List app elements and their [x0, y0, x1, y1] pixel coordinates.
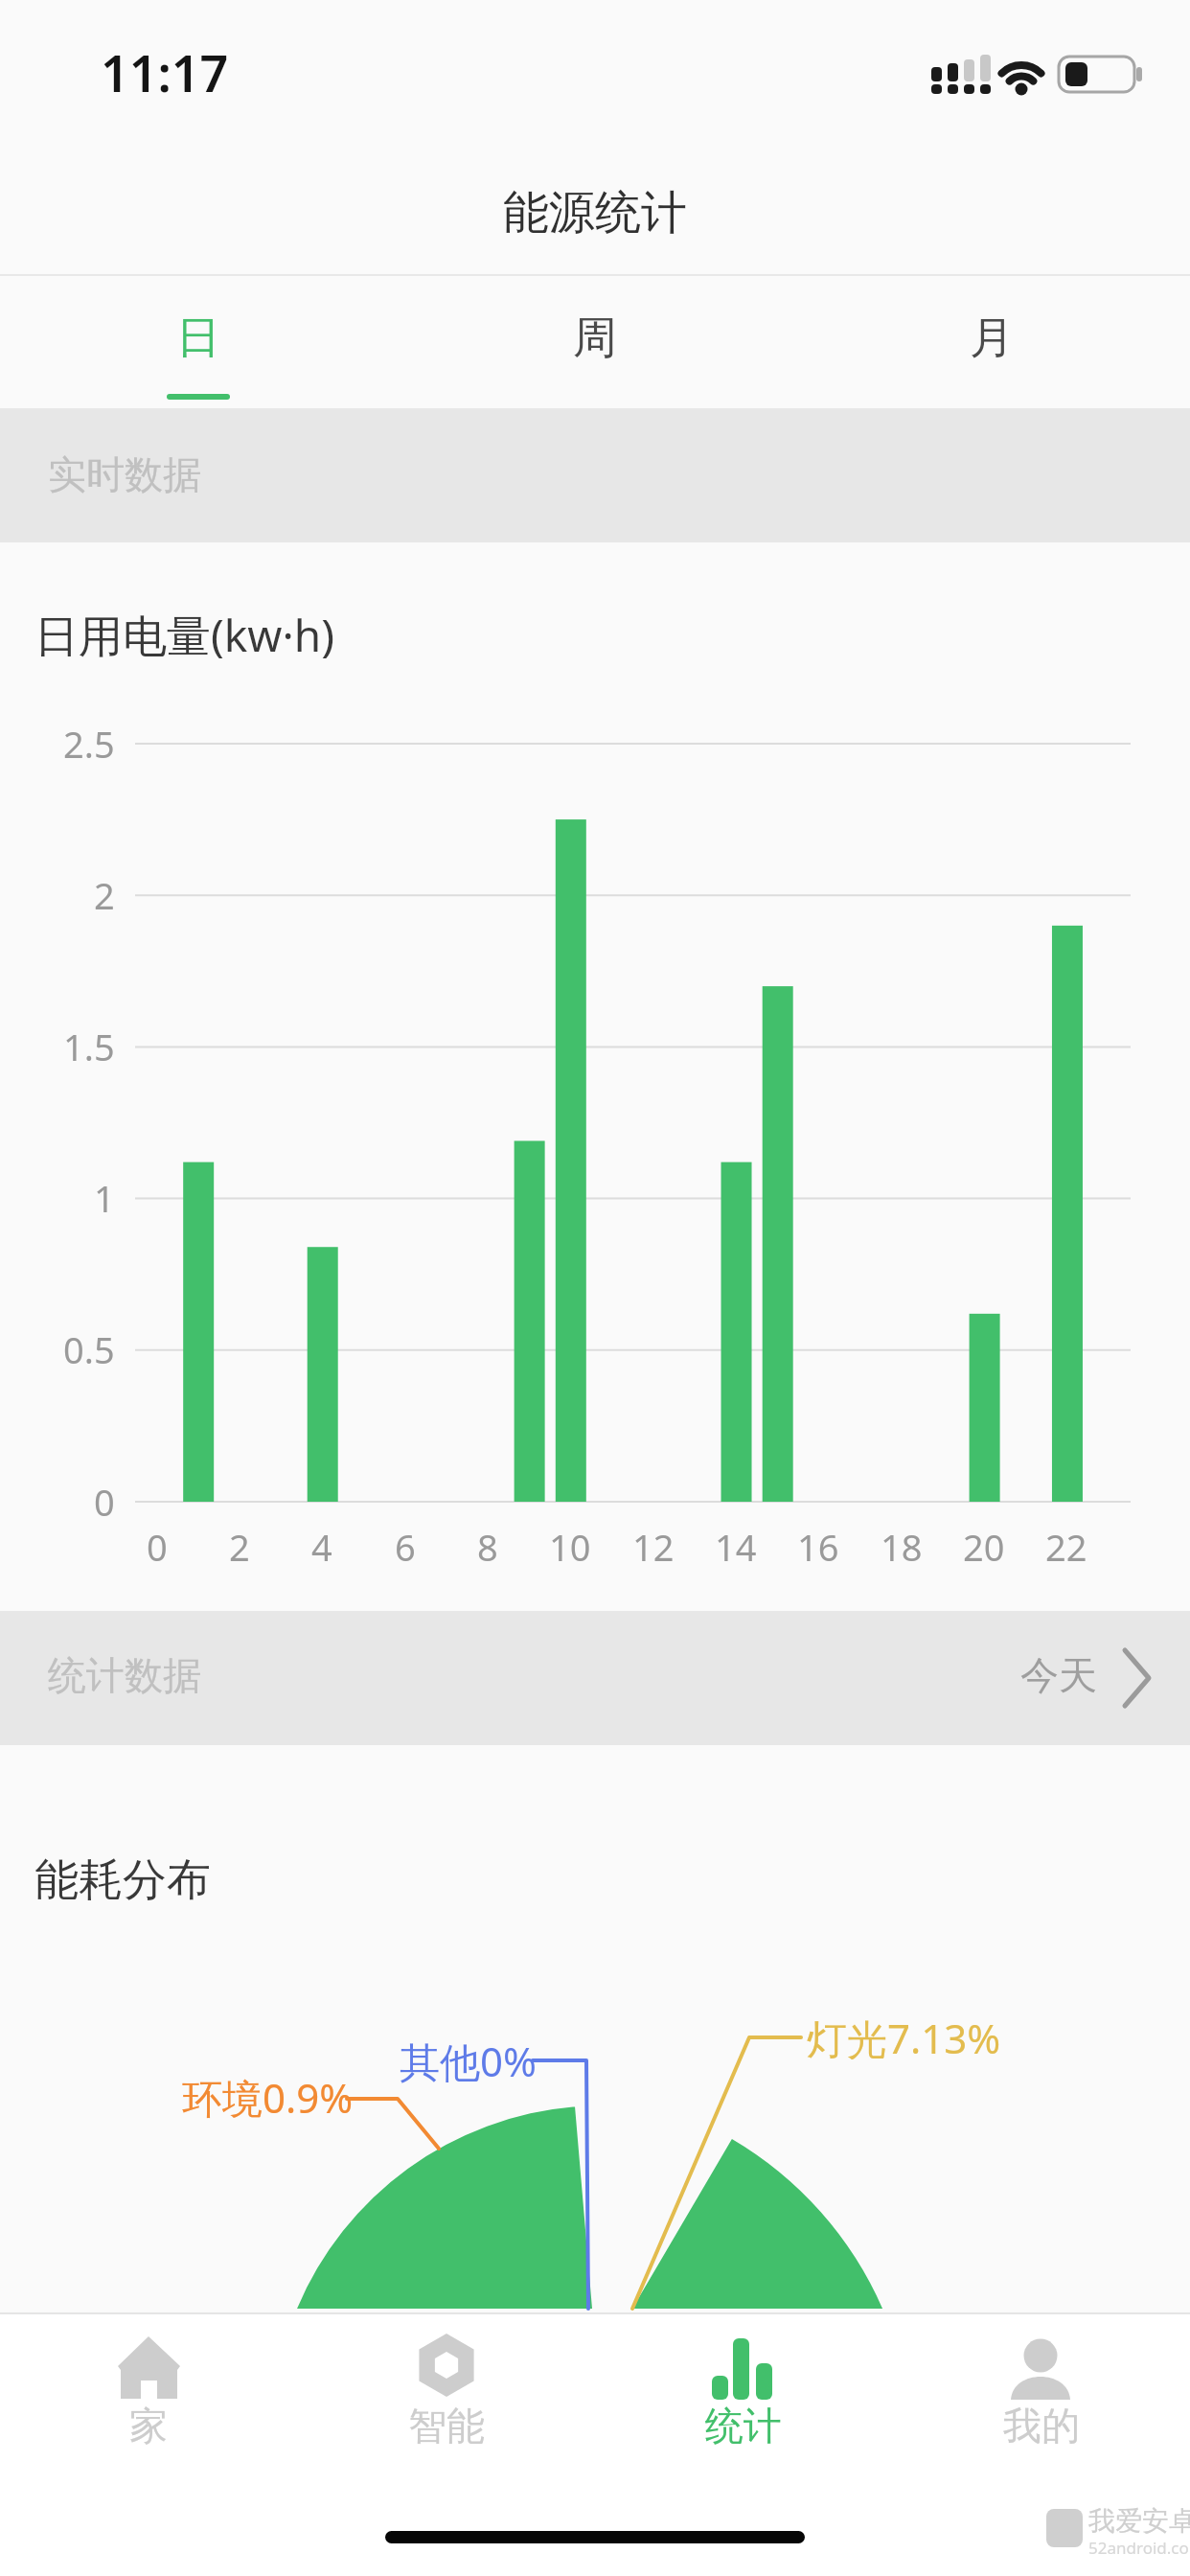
staticText: 统计数据: [48, 1651, 201, 1699]
staticText: 其他0%: [400, 2034, 537, 2088]
staticText: 10: [549, 1522, 591, 1572]
staticText: 日用电量(kw·h): [34, 605, 335, 665]
button[interactable]: [595, 2313, 893, 2534]
staticText: 22: [1045, 1522, 1087, 1572]
staticText: 16: [797, 1522, 839, 1572]
staticText: 灯光7.13%: [807, 2011, 1001, 2065]
staticText: 周: [573, 310, 617, 366]
staticText: 2: [94, 870, 115, 920]
staticText: 8: [477, 1522, 498, 1572]
staticText: 我的: [1003, 2402, 1080, 2449]
staticText: 6: [395, 1522, 416, 1572]
staticText: 家: [129, 2402, 168, 2449]
staticText: 日: [176, 310, 220, 366]
staticText: 能源统计: [503, 184, 687, 241]
staticText: 20: [963, 1522, 1005, 1572]
staticText: 能耗分布: [34, 1852, 211, 1908]
button[interactable]: [893, 2313, 1190, 2534]
staticText: 智能: [408, 2402, 485, 2449]
staticText: 2.5: [63, 719, 115, 769]
button[interactable]: [397, 284, 793, 408]
staticText: 统计: [705, 2402, 782, 2449]
staticText: 14: [715, 1522, 757, 1572]
staticText: 0: [147, 1522, 168, 1572]
button[interactable]: [0, 284, 397, 408]
button[interactable]: [0, 2313, 297, 2534]
button[interactable]: [297, 2313, 595, 2534]
staticText: 12: [632, 1522, 675, 1572]
staticText: 1: [94, 1173, 115, 1223]
staticText: 月: [970, 310, 1014, 366]
staticText: 0: [94, 1477, 115, 1527]
staticText: 实时数据: [48, 450, 201, 498]
staticText: 环境0.9%: [182, 2070, 354, 2125]
staticText: 18: [881, 1522, 923, 1572]
staticText: 1.5: [63, 1022, 115, 1071]
staticText: 2: [229, 1522, 250, 1572]
staticText: 0.5: [63, 1324, 115, 1374]
staticText: 今天: [1020, 1651, 1097, 1699]
staticText: 4: [311, 1522, 332, 1572]
staticText: 11:17: [101, 38, 229, 106]
button[interactable]: [793, 284, 1190, 408]
staticText: 我爱安卓: [1088, 2504, 1190, 2538]
staticText: 52android.com: [1088, 2537, 1190, 2559]
button[interactable]: [0, 1608, 1190, 1742]
